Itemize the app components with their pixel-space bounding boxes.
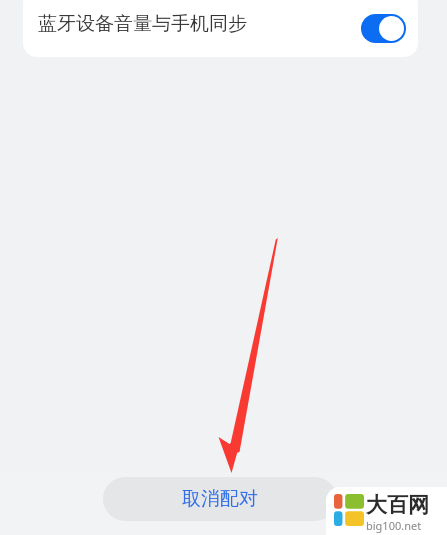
button[interactable]: 蓝牙设备音量与手机同步 [23, 0, 418, 57]
staticText: 蓝牙设备音量与手机同步 [38, 12, 247, 36]
staticText: 大百网 [366, 492, 429, 518]
button[interactable]: 取消配对 [103, 477, 337, 521]
button[interactable]: Sync Bluetooth device volume toggle, on [361, 14, 406, 43]
staticText: 取消配对 [182, 487, 258, 511]
staticText: big100.net [366, 518, 422, 533]
